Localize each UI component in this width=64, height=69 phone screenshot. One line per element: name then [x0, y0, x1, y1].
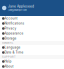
button[interactable]: Storage — [0, 36, 64, 41]
staticText: Appearance — [5, 32, 24, 35]
staticText: About — [5, 65, 14, 68]
button[interactable]: Help — [0, 59, 64, 64]
staticText: GENERAL — [2, 41, 13, 44]
staticText: Language — [5, 46, 21, 49]
button[interactable]: Notifications — [0, 21, 64, 26]
staticText: Privacy — [5, 27, 17, 30]
button[interactable]: Privacy — [0, 26, 64, 31]
staticText: Jane Appleseed — [8, 4, 34, 8]
button[interactable]: Account — [0, 16, 64, 21]
staticText: Storage — [5, 37, 17, 40]
staticText: Help — [5, 60, 12, 63]
button[interactable]: About — [0, 64, 64, 69]
button[interactable]: Date & Time — [0, 50, 64, 55]
staticText: Account — [5, 17, 18, 20]
staticText: Date & Time — [5, 51, 24, 54]
staticText: jane@example.com — [8, 9, 27, 12]
staticText: Notifications — [5, 22, 25, 25]
staticText: SUPPORT — [2, 55, 16, 58]
button[interactable]: Appearance — [0, 31, 64, 36]
button[interactable]: Language — [0, 45, 64, 50]
